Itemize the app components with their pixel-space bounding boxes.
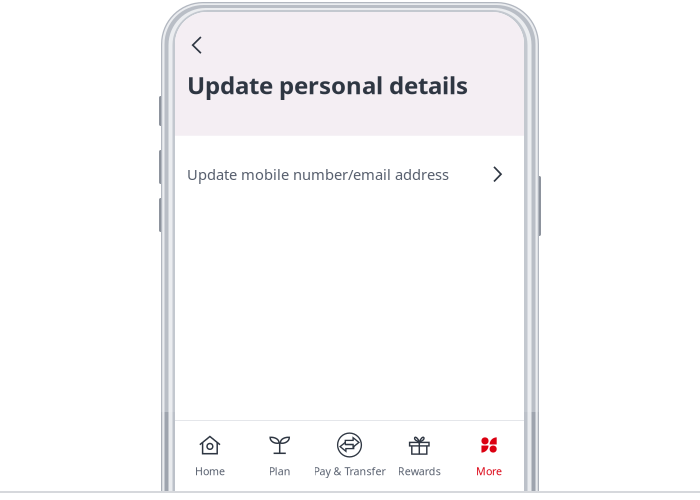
- button[interactable]: Home: [175, 431, 245, 479]
- staticText: Home: [195, 464, 225, 478]
- button[interactable]: Back: [175, 32, 212, 58]
- button[interactable]: Rewards: [384, 431, 454, 479]
- staticText: Pay & Transfer: [313, 464, 385, 478]
- button[interactable]: Pay & Transfer: [315, 431, 384, 479]
- button[interactable]: More: [454, 431, 524, 479]
- staticText: More: [476, 464, 502, 478]
- button[interactable]: Update mobile number/email address: [175, 136, 524, 213]
- button[interactable]: Plan: [245, 431, 315, 479]
- staticText: Update mobile number/email address: [187, 165, 449, 184]
- staticText: Rewards: [398, 464, 441, 478]
- staticText: Update personal details: [187, 69, 468, 101]
- staticText: Plan: [269, 464, 291, 478]
